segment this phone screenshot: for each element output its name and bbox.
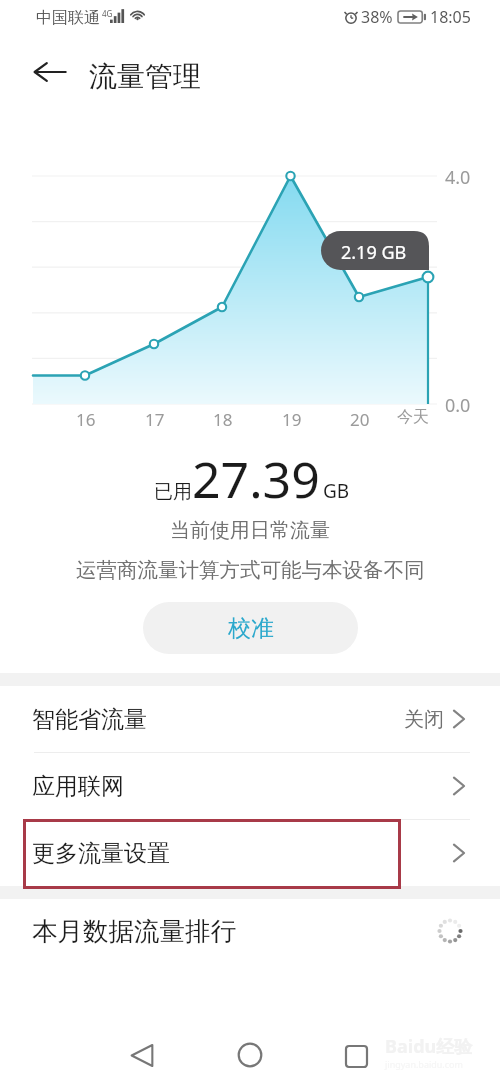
staticText: 应用联网 xyxy=(32,772,124,801)
staticText: 16 xyxy=(76,408,96,431)
staticText: 已用 xyxy=(154,480,192,504)
staticText: 流量管理 xyxy=(89,59,201,94)
button[interactable]: 更多流量设置 xyxy=(0,820,500,886)
staticText: 18:05 xyxy=(430,6,471,28)
button[interactable]: Back xyxy=(28,50,72,94)
staticText: 今天 xyxy=(397,407,429,427)
button[interactable]: 校准 xyxy=(143,602,358,654)
staticText: jingyan.baidu.com xyxy=(385,1058,463,1070)
staticText: 运营商流量计算方式可能与本设备不同 xyxy=(76,557,425,583)
staticText: 关闭 xyxy=(404,707,444,732)
button[interactable]: Back xyxy=(114,1027,170,1083)
button[interactable]: 智能省流量 xyxy=(0,686,500,752)
button[interactable]: Home xyxy=(222,1027,278,1083)
staticText: Baidu经验 xyxy=(385,1034,473,1059)
staticText: 智能省流量 xyxy=(32,705,147,734)
staticText: 更多流量设置 xyxy=(32,839,170,868)
staticText: 17 xyxy=(145,408,165,431)
staticText: 中国联通 xyxy=(36,8,100,28)
staticText: GB xyxy=(323,478,350,504)
staticText: 当前使用日常流量 xyxy=(170,518,330,543)
staticText: 0.0 xyxy=(445,393,471,418)
staticText: 本月数据流量排行 xyxy=(32,915,236,947)
staticText: 4G xyxy=(102,8,113,19)
staticText: 2.19 GB xyxy=(341,240,407,265)
button[interactable]: Recents xyxy=(328,1028,384,1083)
button[interactable]: 应用联网 xyxy=(0,753,500,819)
staticText: 38% xyxy=(361,6,393,28)
staticText: 27.39 xyxy=(192,445,320,513)
staticText: 校准 xyxy=(228,614,274,643)
staticText: 20 xyxy=(350,408,370,431)
staticText: 18 xyxy=(213,408,233,431)
staticText: 4.0 xyxy=(445,165,471,190)
staticText: 19 xyxy=(282,408,302,431)
